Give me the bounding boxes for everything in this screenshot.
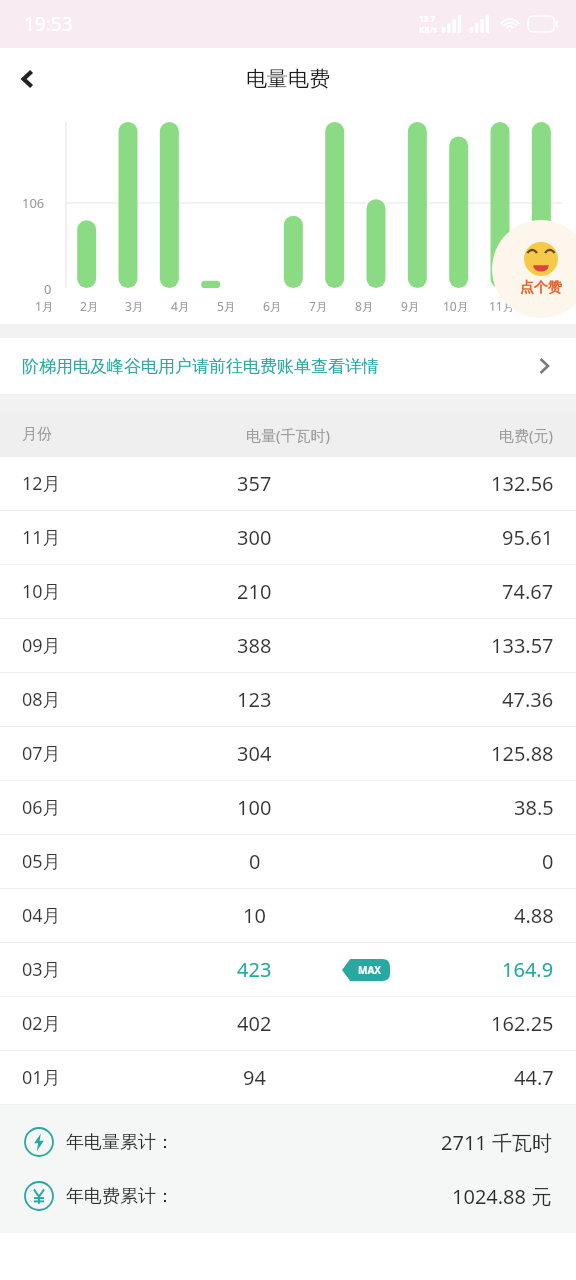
- staticText: 132.56: [491, 470, 554, 497]
- staticText: 年电量累计：: [66, 1131, 441, 1154]
- staticText: 2月: [80, 298, 99, 314]
- staticText: 133.57: [491, 632, 554, 659]
- staticText: 6月: [263, 298, 282, 314]
- staticText: 402: [237, 1010, 272, 1037]
- staticText: 13.7 KB/s: [419, 13, 437, 35]
- staticText: 304: [237, 740, 272, 767]
- staticText: 点个赞: [520, 279, 562, 297]
- staticText: 07月: [22, 741, 167, 766]
- staticText: 10: [243, 902, 266, 929]
- staticText: MAX: [358, 963, 382, 977]
- button[interactable]: 11月: [0, 511, 576, 564]
- staticText: 03月: [22, 957, 167, 982]
- staticText: 年电费累计：: [66, 1185, 452, 1208]
- staticText: 1024.88 元: [452, 1183, 552, 1210]
- staticText: 47.36: [502, 686, 554, 713]
- button[interactable]: 08月: [0, 673, 576, 726]
- staticText: 94: [243, 1064, 266, 1091]
- button[interactable]: 02月: [0, 997, 576, 1050]
- staticText: 3月: [125, 298, 144, 314]
- staticText: 162.25: [491, 1010, 554, 1037]
- button[interactable]: 年电费累计：: [0, 1169, 576, 1223]
- staticText: 164.9: [502, 956, 554, 983]
- button[interactable]: 10月: [0, 565, 576, 618]
- staticText: 123: [237, 686, 272, 713]
- staticText: 106: [22, 194, 45, 212]
- button[interactable]: 阶梯用电及峰谷电用户请前往电费账单查看详情: [0, 338, 576, 394]
- button[interactable]: 01月: [0, 1051, 576, 1104]
- staticText: 2711 千瓦时: [441, 1129, 552, 1156]
- staticText: 电量电费: [246, 66, 330, 92]
- staticText: 阶梯用电及峰谷电用户请前往电费账单查看详情: [22, 356, 534, 377]
- staticText: 7月: [309, 298, 328, 314]
- staticText: 5月: [217, 298, 236, 314]
- staticText: 0: [542, 848, 554, 875]
- staticText: 210: [237, 578, 272, 605]
- staticText: 0: [249, 848, 261, 875]
- staticText: 1月: [35, 298, 54, 314]
- button[interactable]: 09月: [0, 619, 576, 672]
- button[interactable]: 05月: [0, 835, 576, 888]
- staticText: 4.88: [514, 902, 554, 929]
- button[interactable]: 03月: [0, 943, 576, 996]
- staticText: 300: [237, 524, 272, 551]
- staticText: 电量(千瓦时): [246, 425, 331, 445]
- staticText: 04月: [22, 903, 167, 928]
- staticText: 9月: [401, 298, 420, 314]
- button[interactable]: 12月: [0, 457, 576, 510]
- staticText: 4月: [171, 298, 190, 314]
- staticText: 11月: [22, 525, 167, 550]
- staticText: 09月: [22, 633, 167, 658]
- button[interactable]: 06月: [0, 781, 576, 834]
- staticText: 08月: [22, 687, 167, 712]
- staticText: 95.61: [502, 524, 554, 551]
- staticText: 12月: [22, 471, 167, 496]
- staticText: 05月: [22, 849, 167, 874]
- staticText: 电费(元): [499, 425, 554, 445]
- button[interactable]: 年电量累计：: [0, 1115, 576, 1169]
- staticText: 388: [237, 632, 272, 659]
- button[interactable]: 点个赞: [492, 220, 576, 318]
- button[interactable]: Back: [0, 51, 56, 107]
- staticText: 10月: [22, 579, 167, 604]
- staticText: 8月: [355, 298, 374, 314]
- staticText: 10月: [443, 298, 469, 314]
- staticText: 100: [237, 794, 272, 821]
- staticText: 125.88: [491, 740, 554, 767]
- staticText: 38.5: [514, 794, 554, 821]
- staticText: 月份: [22, 425, 188, 444]
- staticText: 06月: [22, 795, 167, 820]
- staticText: 19:53: [24, 11, 73, 37]
- staticText: 01月: [22, 1065, 167, 1090]
- button[interactable]: 04月: [0, 889, 576, 942]
- staticText: 357: [237, 470, 272, 497]
- staticText: 02月: [22, 1011, 167, 1036]
- staticText: 0: [44, 280, 52, 298]
- staticText: 11月: [489, 298, 515, 314]
- staticText: 423: [237, 956, 272, 983]
- button[interactable]: 07月: [0, 727, 576, 780]
- staticText: 74.67: [502, 578, 554, 605]
- staticText: 44.7: [514, 1064, 554, 1091]
